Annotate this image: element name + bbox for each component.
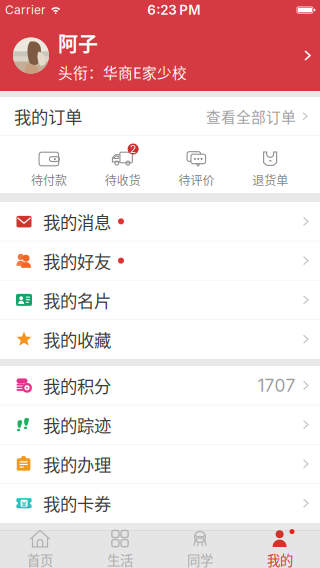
staticText: 我的收藏 <box>43 327 111 352</box>
staticText: 生活 <box>107 550 133 568</box>
button[interactable]: 我的消息 <box>0 202 320 241</box>
button[interactable]: 我的卡券 <box>0 484 320 523</box>
button[interactable]: 阿子 <box>0 20 320 91</box>
staticText: 查看全部订单 <box>206 106 296 127</box>
button[interactable]: 我的订单 <box>0 97 320 135</box>
staticText: 我的消息 <box>43 209 111 234</box>
button[interactable]: 我的办理 <box>0 444 320 484</box>
staticText: 我的积分 <box>43 373 111 398</box>
button[interactable]: 我的 <box>240 530 320 568</box>
button[interactable]: 生活 <box>80 530 160 568</box>
button[interactable]: 我的好友 <box>0 241 320 280</box>
button[interactable]: 待付款 <box>12 136 86 193</box>
staticText: 阿子 <box>58 28 98 57</box>
staticText: 我的名片 <box>43 287 111 312</box>
staticText: 待付款 <box>31 171 67 188</box>
staticText: 退货单 <box>252 171 288 188</box>
staticText: 首页 <box>27 550 53 568</box>
button[interactable]: 同学 <box>160 530 240 568</box>
button[interactable]: 退货单 <box>233 136 307 193</box>
staticText: 6:23 PM <box>147 2 200 18</box>
staticText: 我的 <box>267 550 293 568</box>
button[interactable]: 2 <box>86 136 160 193</box>
staticText: 我的踪迹 <box>43 412 111 437</box>
staticText: 我的办理 <box>43 451 111 476</box>
staticText: 2 <box>130 142 137 155</box>
staticText: 1707 <box>258 375 296 396</box>
staticText: 我的卡券 <box>43 491 111 516</box>
button[interactable]: 待评价 <box>159 136 233 193</box>
staticText: 头衔：华商E家少校 <box>58 61 187 83</box>
staticText: 我的好友 <box>43 248 111 273</box>
staticText: 待评价 <box>178 171 214 188</box>
staticText: 待收货 <box>105 171 141 188</box>
button[interactable]: 我的收藏 <box>0 320 320 359</box>
staticText: Carrier <box>5 3 46 17</box>
button[interactable]: 我的积分 <box>0 366 320 405</box>
button[interactable]: 首页 <box>0 530 80 568</box>
staticText: 同学 <box>187 550 213 568</box>
button[interactable]: 我的踪迹 <box>0 405 320 444</box>
staticText: 我的订单 <box>14 104 82 129</box>
button[interactable]: 我的名片 <box>0 280 320 320</box>
